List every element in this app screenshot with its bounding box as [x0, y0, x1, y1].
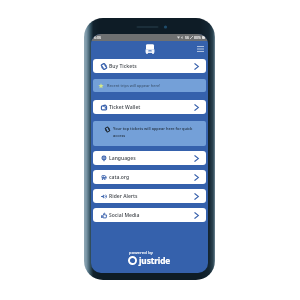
- button[interactable]: Buy Tickets: [93, 59, 206, 73]
- staticText: Buy Tickets: [109, 63, 137, 70]
- button[interactable]: CATA bus home: [143, 42, 156, 55]
- staticText: cata.org: [109, 174, 130, 181]
- staticText: Recent trips will appear here!: [107, 83, 161, 88]
- staticText: Ticket Wallet: [109, 104, 141, 111]
- staticText: Your top tickets will appear here for qu…: [113, 126, 193, 138]
- button[interactable]: Ticket Wallet: [93, 100, 206, 114]
- button[interactable]: cata.org: [93, 170, 206, 184]
- button[interactable]: Social Media: [93, 208, 206, 222]
- staticText: Social Media: [109, 212, 140, 219]
- staticText: 56: [185, 35, 189, 40]
- staticText: Rider Alerts: [109, 193, 138, 200]
- staticText: powered by: [129, 250, 153, 256]
- button[interactable]: Menu: [195, 44, 205, 54]
- staticText: 80%: [194, 35, 201, 40]
- button[interactable]: Rider Alerts: [93, 189, 206, 203]
- button[interactable]: Languages: [93, 151, 206, 165]
- staticText: justride: [139, 255, 171, 266]
- staticText: Languages: [109, 155, 136, 162]
- staticText: 6:06: [94, 35, 102, 40]
